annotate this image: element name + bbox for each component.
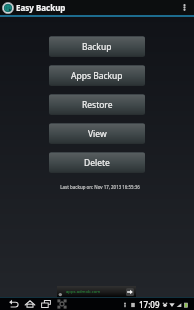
button[interactable]: Apps Backup [49, 65, 145, 86]
button[interactable]: Delete [49, 152, 145, 173]
staticText: Restore [82, 99, 113, 111]
button[interactable]: View [49, 123, 145, 144]
button[interactable]: Back [8, 298, 19, 310]
button[interactable]: Restore [49, 94, 145, 115]
staticText: Delete [84, 157, 110, 169]
staticText: Backup [82, 41, 112, 53]
staticText: Last backup on: Nov 17, 2013 16:55:36 [60, 184, 140, 190]
button[interactable]: Home [24, 298, 35, 310]
staticText: Easy Backup [16, 2, 66, 13]
button[interactable]: More options [179, 2, 190, 13]
button[interactable]: Backup [49, 36, 145, 57]
button[interactable]: apps.admob.com [57, 286, 136, 297]
button[interactable]: Screenshot [56, 298, 67, 310]
staticText: Apps Backup [71, 70, 123, 82]
button[interactable]: Recent apps [40, 298, 51, 310]
staticText: View [88, 128, 107, 140]
staticText: apps.admob.com [66, 289, 101, 295]
staticText: 17:09 [139, 299, 160, 310]
